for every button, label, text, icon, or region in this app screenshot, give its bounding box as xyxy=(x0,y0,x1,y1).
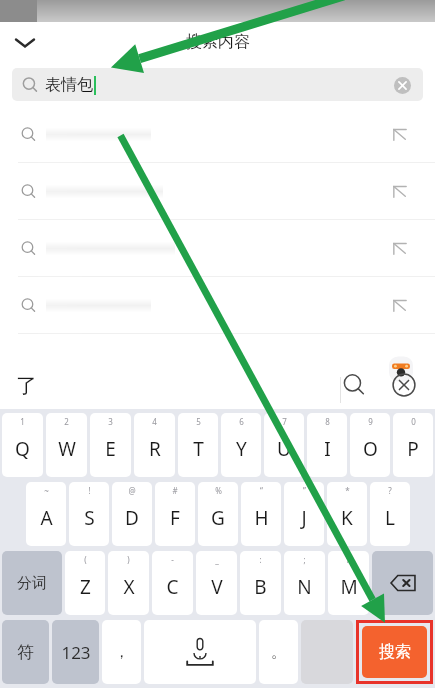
button[interactable]: Fill suggestion xyxy=(389,181,411,203)
staticText: 123 xyxy=(61,641,91,664)
staticText: ” xyxy=(303,485,306,496)
button[interactable]: Backspace xyxy=(372,551,433,615)
button[interactable]: 6 xyxy=(221,413,261,477)
staticText: * xyxy=(345,485,350,496)
staticText: S xyxy=(84,505,95,531)
button[interactable]: Emoji xyxy=(387,355,415,383)
button[interactable]: # xyxy=(155,482,195,546)
staticText: 了 xyxy=(16,373,37,399)
staticText: ; xyxy=(303,554,306,565)
staticText: # xyxy=(172,485,178,496)
staticText: H xyxy=(254,505,269,531)
staticText: C xyxy=(166,574,179,600)
button[interactable]: 分词 xyxy=(2,551,62,615)
staticText: 0 xyxy=(411,416,416,427)
staticText: _ xyxy=(215,554,219,565)
staticText: 7 xyxy=(282,416,287,427)
button[interactable]: Space / voice input xyxy=(144,620,256,684)
button[interactable]: 5 xyxy=(178,413,218,477)
button[interactable]: ; xyxy=(284,551,325,615)
button[interactable]: Close candidates xyxy=(391,372,417,398)
staticText: I xyxy=(324,436,331,462)
staticText: O xyxy=(363,436,378,462)
button[interactable]: 。 xyxy=(259,620,298,684)
staticText: 5 xyxy=(196,416,201,427)
staticText: W xyxy=(58,436,76,462)
staticText: 分词 xyxy=(17,574,47,593)
staticText: T xyxy=(193,436,204,462)
button[interactable]: “ xyxy=(241,482,281,546)
staticText: ) xyxy=(127,554,130,565)
staticText: E xyxy=(105,436,116,462)
button[interactable]: - xyxy=(152,551,193,615)
staticText: : xyxy=(259,554,262,565)
staticText: L xyxy=(385,505,395,531)
staticText: 8 xyxy=(325,416,330,427)
button[interactable]: Clear text xyxy=(391,74,413,96)
staticText: 符 xyxy=(17,642,34,663)
button[interactable]: 1 xyxy=(2,413,43,477)
button[interactable]: ” xyxy=(284,482,324,546)
staticText: 搜索内容 xyxy=(186,32,250,52)
staticText: ， xyxy=(114,643,129,662)
button[interactable]: 符 xyxy=(2,620,49,684)
staticText: N xyxy=(297,574,312,600)
button[interactable]: 9 xyxy=(350,413,390,477)
staticText: R xyxy=(149,436,161,462)
button[interactable]: Search candidates xyxy=(341,372,367,398)
button[interactable]: Fill suggestion xyxy=(389,238,411,260)
button[interactable]: Collapse xyxy=(8,25,42,59)
staticText: U xyxy=(277,436,291,462)
staticText: Z xyxy=(80,574,91,600)
staticText: F xyxy=(170,505,180,531)
button[interactable]: 4 xyxy=(134,413,175,477)
button[interactable]: Fill suggestion xyxy=(0,220,435,277)
button[interactable]: * xyxy=(327,482,367,546)
button[interactable]: / xyxy=(328,551,369,615)
staticText: K xyxy=(341,505,353,531)
button[interactable]: ， xyxy=(102,620,141,684)
button[interactable]: 0 xyxy=(393,413,433,477)
staticText: M xyxy=(340,574,358,600)
staticText: X xyxy=(123,574,135,600)
button[interactable]: 2 xyxy=(46,413,87,477)
button[interactable]: Fill suggestion xyxy=(389,295,411,317)
staticText: 9 xyxy=(368,416,373,427)
button[interactable]: @ xyxy=(112,482,152,546)
button[interactable]: Fill suggestion xyxy=(0,277,435,334)
staticText: D xyxy=(125,505,139,531)
button[interactable]: : xyxy=(240,551,281,615)
staticText: V xyxy=(211,574,223,600)
button[interactable]: % xyxy=(198,482,238,546)
button[interactable]: Fill suggestion xyxy=(0,163,435,220)
staticText: G xyxy=(211,505,225,531)
staticText: 6 xyxy=(239,416,244,427)
staticText: / xyxy=(347,554,350,565)
staticText: B xyxy=(254,574,267,600)
button[interactable]: 7 xyxy=(264,413,304,477)
button[interactable]: 8 xyxy=(307,413,347,477)
button[interactable]: ( xyxy=(65,551,105,615)
staticText: 搜索 xyxy=(379,642,411,662)
button[interactable]: ? xyxy=(370,482,410,546)
button[interactable]: Fill suggestion xyxy=(0,106,435,163)
button[interactable]: 搜索 xyxy=(362,626,427,678)
staticText: ( xyxy=(84,554,87,565)
staticText: Y xyxy=(236,436,247,462)
staticText: % xyxy=(215,485,222,496)
button[interactable]: 3 xyxy=(90,413,131,477)
staticText: 3 xyxy=(108,416,113,427)
staticText: J xyxy=(301,505,307,531)
button[interactable]: _ xyxy=(196,551,237,615)
button[interactable]: Fill suggestion xyxy=(389,124,411,146)
button[interactable]: 123 xyxy=(52,620,99,684)
button[interactable]: 表情包 xyxy=(12,68,423,101)
staticText: - xyxy=(171,554,174,565)
button[interactable]: ~ xyxy=(26,482,66,546)
staticText: ? xyxy=(388,485,392,496)
staticText: A xyxy=(40,505,53,531)
button[interactable]: ) xyxy=(108,551,149,615)
staticText: ! xyxy=(88,485,91,496)
button[interactable]: ! xyxy=(69,482,109,546)
